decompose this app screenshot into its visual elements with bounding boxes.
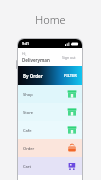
staticText: Sign out bbox=[62, 55, 76, 60]
button[interactable]: Sign out bbox=[60, 54, 78, 61]
staticText: Cafe bbox=[23, 128, 32, 133]
staticText: Hi, bbox=[22, 51, 27, 56]
button[interactable]: By Order bbox=[18, 66, 82, 85]
other: Cafe bbox=[67, 125, 77, 135]
other: Order bbox=[67, 143, 77, 153]
button[interactable]: Shop bbox=[18, 85, 82, 103]
button[interactable]: Cafe bbox=[18, 121, 82, 139]
button[interactable]: Store bbox=[18, 103, 82, 121]
button[interactable]: Cart bbox=[18, 157, 82, 175]
staticText: Order bbox=[23, 146, 35, 151]
staticText: By Order bbox=[23, 73, 43, 79]
staticText: 9:41 bbox=[22, 41, 29, 46]
other: Shop bbox=[67, 89, 77, 99]
staticText: Shop bbox=[23, 92, 33, 97]
staticText: FILTER bbox=[64, 73, 77, 78]
other: Store bbox=[67, 107, 77, 117]
button[interactable]: Order bbox=[18, 139, 82, 157]
staticText: Cart bbox=[23, 164, 32, 169]
staticText: Store bbox=[23, 110, 34, 115]
other: Cart bbox=[67, 161, 77, 171]
staticText: Deliveryman bbox=[22, 57, 50, 63]
staticText: Home bbox=[35, 12, 66, 27]
